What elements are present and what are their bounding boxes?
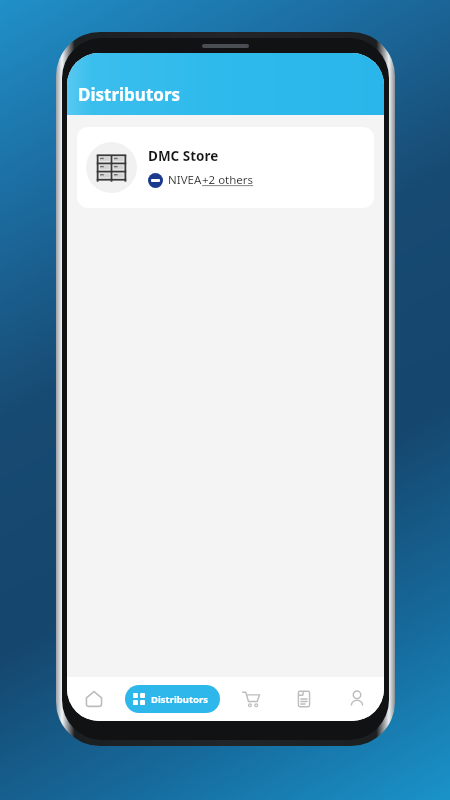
staticText: DMC Store (148, 147, 219, 165)
button[interactable]: DMC Store (77, 127, 374, 208)
button[interactable]: Cart (229, 677, 273, 721)
staticText: +2 others (202, 172, 254, 188)
button[interactable]: Profile (335, 677, 379, 721)
staticText: NIVEA (168, 172, 202, 188)
button[interactable]: Home (72, 677, 116, 721)
button[interactable]: Distributors (125, 685, 220, 713)
button[interactable]: Orders (282, 677, 326, 721)
staticText: Distributors (151, 693, 209, 706)
staticText: Distributors (78, 83, 181, 106)
